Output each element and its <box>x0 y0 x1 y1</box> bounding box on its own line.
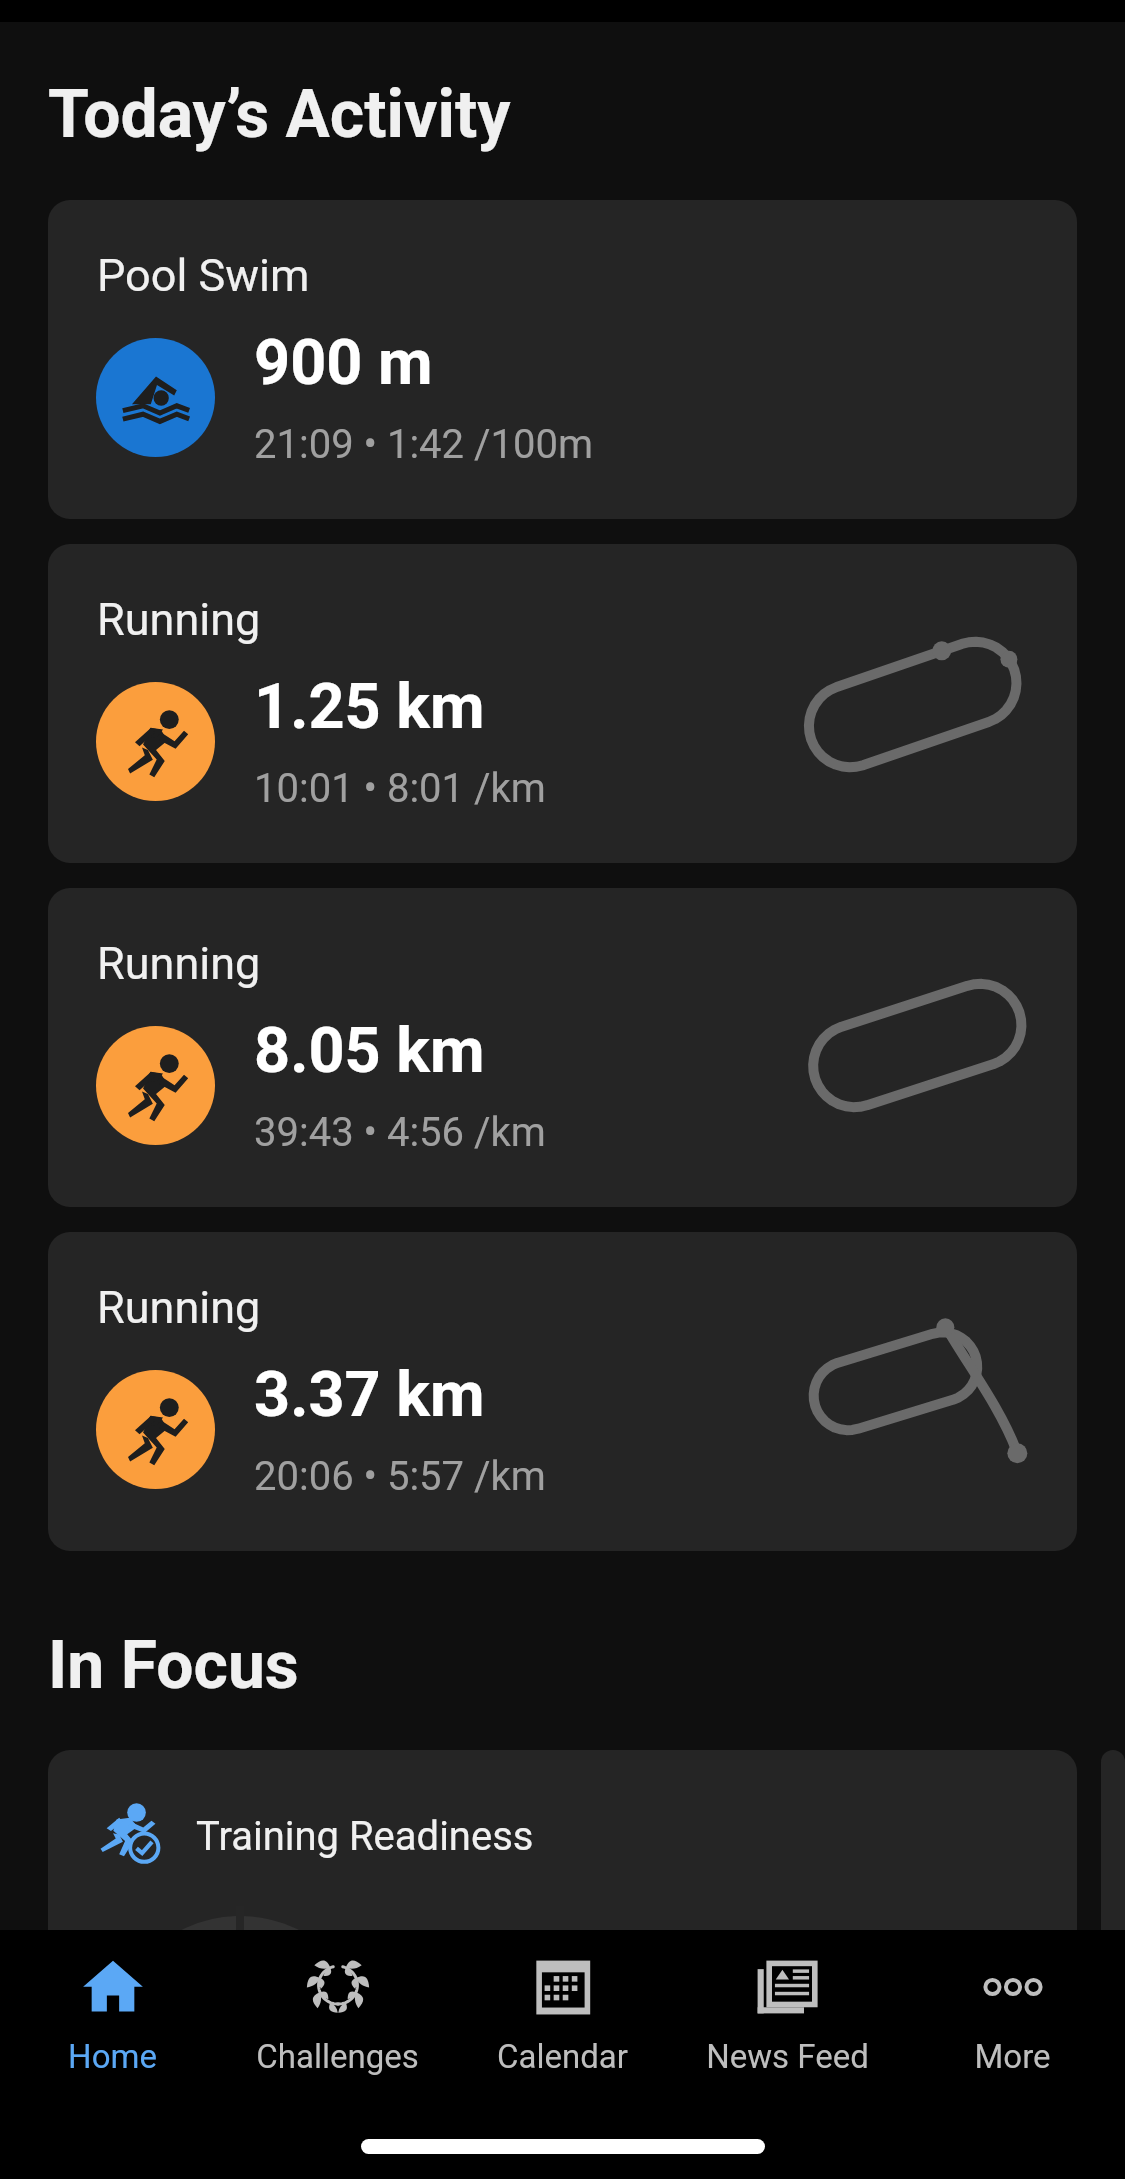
button[interactable]: Running <box>48 888 1077 1207</box>
staticText: News Feed <box>706 2037 869 2076</box>
staticText: 900 m <box>254 326 433 400</box>
staticText: Running <box>97 937 261 990</box>
button[interactable]: More <box>900 1930 1125 2179</box>
staticText: Home <box>68 2037 157 2076</box>
staticText: Training Readiness <box>196 1813 534 1860</box>
staticText: Calendar <box>497 2037 628 2076</box>
button[interactable]: Pool Swim <box>48 200 1077 519</box>
staticText: More <box>974 2037 1051 2076</box>
button[interactable] <box>1101 1750 1125 1950</box>
button[interactable]: Challenges <box>225 1930 450 2179</box>
staticText: Running <box>97 1281 261 1334</box>
staticText: 10:01 • 8:01 /km <box>254 765 546 812</box>
button[interactable]: Calendar <box>450 1930 675 2179</box>
button[interactable]: Running <box>48 1232 1077 1551</box>
staticText: 20:06 • 5:57 /km <box>254 1453 546 1500</box>
staticText: 39:43 • 4:56 /km <box>254 1109 546 1156</box>
staticText: Running <box>97 593 261 646</box>
button[interactable]: Running <box>48 544 1077 863</box>
button[interactable]: Training Readiness <box>48 1750 1077 1950</box>
staticText: 21:09 • 1:42 /100m <box>254 421 594 468</box>
staticText: Challenges <box>256 2037 419 2076</box>
staticText: 1.25 km <box>254 670 485 744</box>
button[interactable]: News Feed <box>675 1930 900 2179</box>
staticText: In Focus <box>48 1627 299 1704</box>
staticText: Today’s Activity <box>48 76 511 153</box>
staticText: 3.37 km <box>254 1358 485 1432</box>
staticText: 8.05 km <box>254 1014 485 1088</box>
staticText: Pool Swim <box>97 249 310 302</box>
button[interactable]: Home <box>0 1930 225 2179</box>
